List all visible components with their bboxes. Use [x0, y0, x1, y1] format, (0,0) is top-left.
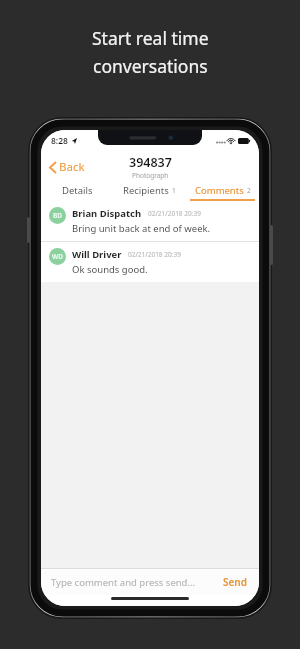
staticText: Back	[59, 159, 85, 175]
staticText: 8:28	[51, 135, 68, 147]
staticText: Details	[62, 184, 93, 197]
staticText: 02/21/2018 20:39	[148, 209, 201, 218]
staticText: Comments	[195, 184, 244, 197]
staticText: Ok sounds good.	[72, 263, 148, 276]
button[interactable]: Send	[221, 573, 249, 591]
staticText: Type comment and press send...	[51, 576, 196, 589]
staticText: 394837	[129, 154, 172, 171]
staticText: conversations	[93, 54, 208, 78]
button[interactable]: Comments	[186, 182, 259, 199]
staticText: 02/21/2018 20:39	[128, 250, 181, 259]
staticText: Recipients	[123, 184, 169, 197]
button[interactable]: WD	[41, 242, 259, 282]
button[interactable]: Recipients	[113, 182, 186, 199]
staticText: Brian Dispatch	[72, 207, 142, 220]
staticText: 2	[247, 186, 251, 195]
staticText: WD	[52, 252, 63, 261]
staticText: BD	[53, 211, 63, 220]
staticText: Start real time	[92, 26, 209, 50]
button[interactable]: Type comment and press send...	[41, 569, 259, 595]
staticText: 1	[172, 186, 176, 195]
staticText: Bring unit back at end of week.	[72, 222, 211, 235]
button[interactable]: Details	[41, 182, 113, 199]
button[interactable]: BD	[41, 201, 259, 241]
button[interactable]: Back	[47, 155, 88, 179]
staticText: Photograph	[132, 171, 169, 180]
staticText: Will Driver	[72, 248, 122, 261]
staticText: Send	[223, 575, 247, 589]
